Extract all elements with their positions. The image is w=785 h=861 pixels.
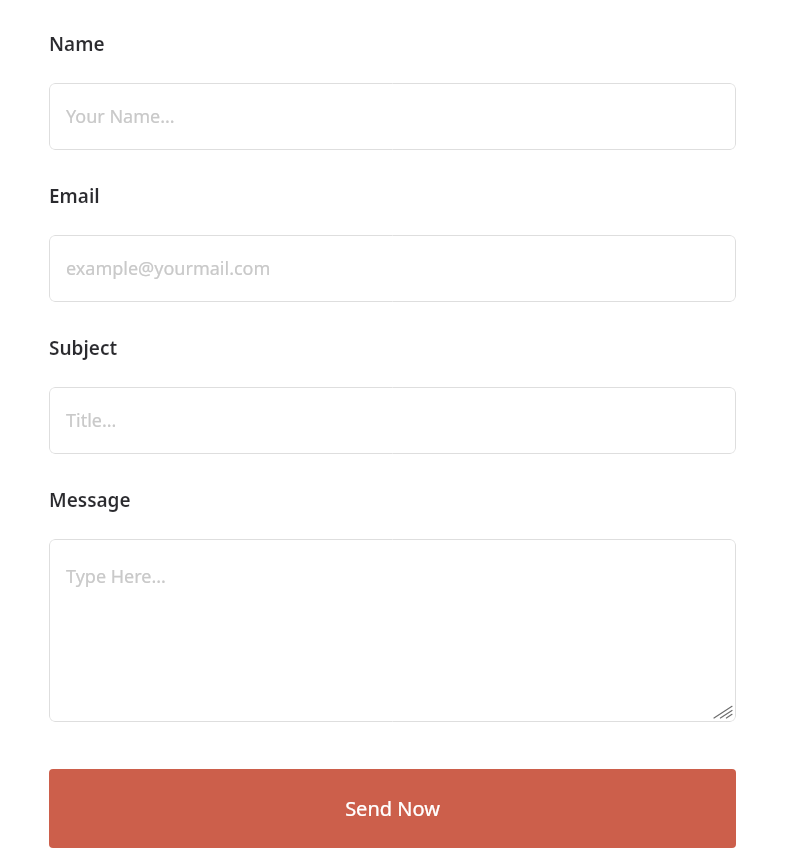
staticText: Email [49,183,100,209]
button[interactable]: Type Here... [49,539,736,722]
button[interactable]: Send Now [49,769,736,848]
staticText: Subject [49,335,118,361]
button[interactable]: example@yourmail.com [49,235,736,302]
staticText: Your Name... [66,104,175,129]
staticText: Name [49,31,105,57]
staticText: Title... [66,408,117,433]
button[interactable]: Title... [49,387,736,454]
button[interactable]: Your Name... [49,83,736,150]
staticText: example@yourmail.com [66,256,271,281]
staticText: Message [49,487,131,513]
staticText: Type Here... [66,564,166,589]
staticText: Send Now [345,795,440,822]
